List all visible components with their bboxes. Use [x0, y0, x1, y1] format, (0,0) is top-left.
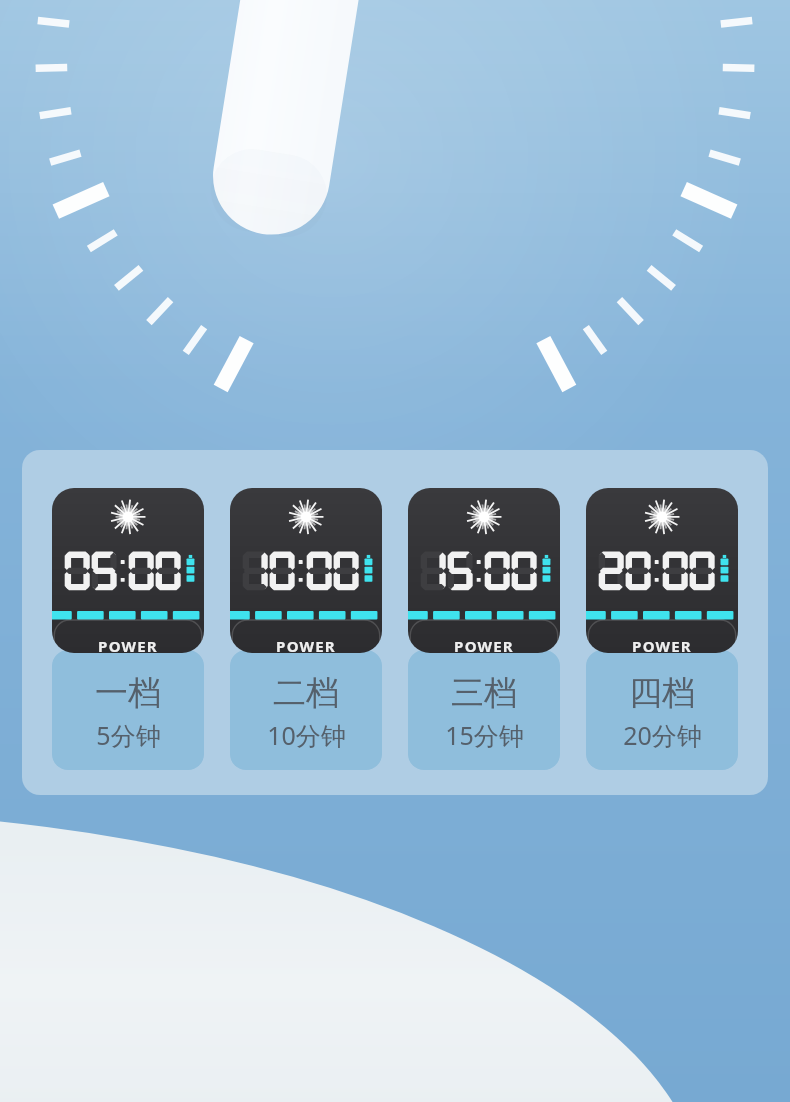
staticText: 15分钟 — [445, 718, 524, 752]
staticText: 四档 — [629, 672, 695, 714]
button[interactable]: 三档 — [408, 488, 560, 770]
staticText: 一档 — [95, 672, 161, 714]
staticText: 5分钟 — [96, 718, 161, 752]
button[interactable]: 一档 — [52, 488, 204, 770]
staticText: 10分钟 — [267, 718, 346, 752]
staticText: 三档 — [451, 672, 517, 714]
staticText: POWER — [408, 636, 560, 653]
staticText: POWER — [52, 636, 204, 653]
button[interactable]: 二档 — [230, 488, 382, 770]
staticText: 20分钟 — [623, 718, 702, 752]
staticText: POWER — [586, 636, 738, 653]
button[interactable]: 四档 — [586, 488, 738, 770]
staticText: 二档 — [273, 672, 339, 714]
staticText: POWER — [230, 636, 382, 653]
